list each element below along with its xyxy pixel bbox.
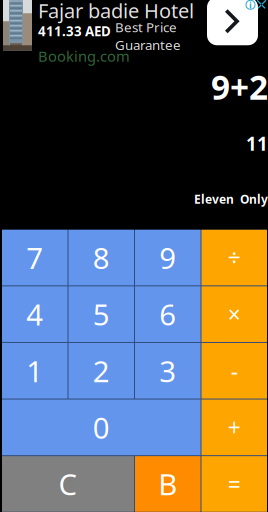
button[interactable]: 8	[68, 230, 134, 285]
button[interactable]: ÷	[201, 230, 267, 285]
button[interactable]: ×	[201, 286, 267, 342]
staticText: 411.33 AED	[38, 22, 111, 40]
button[interactable]: 5	[68, 286, 134, 342]
button[interactable]: =	[201, 456, 267, 512]
staticText: 7	[26, 238, 43, 277]
button[interactable]: -	[201, 343, 267, 398]
staticText: 2	[93, 351, 110, 390]
staticText: 9+2	[211, 65, 268, 109]
staticText: Eleven Only	[194, 191, 268, 207]
button[interactable]: 4	[2, 286, 67, 342]
button[interactable]: 9	[135, 230, 200, 285]
staticText: 3	[159, 351, 176, 390]
staticText: Fajar badie Hotel	[38, 0, 194, 24]
staticText: 11	[246, 131, 268, 156]
staticText: ×	[228, 299, 241, 329]
staticText: 6	[159, 295, 176, 334]
staticText: Booking.com	[38, 46, 130, 66]
staticText: 0	[93, 408, 110, 447]
staticText: i	[249, 0, 252, 11]
button[interactable]: 1	[2, 343, 67, 398]
button[interactable]: 7	[2, 230, 67, 285]
staticText: =	[228, 469, 241, 499]
button[interactable]: 0	[2, 400, 200, 455]
button[interactable]: 2	[68, 343, 134, 398]
button[interactable]: Open advertisement	[207, 0, 258, 45]
staticText: ÷	[228, 242, 241, 273]
staticText: C	[58, 464, 77, 503]
staticText: 1	[26, 351, 43, 390]
staticText: -	[231, 356, 238, 386]
button[interactable]: Ad information	[245, 0, 256, 10]
staticText: 9	[159, 238, 176, 277]
staticText: 4	[26, 295, 43, 334]
button[interactable]: 6	[135, 286, 200, 342]
staticText: 8	[93, 238, 110, 277]
button[interactable]: 3	[135, 343, 200, 398]
staticText: Best Price Guarantee	[115, 18, 181, 54]
button[interactable]: B	[135, 456, 200, 512]
button[interactable]: Close advertisement	[257, 0, 267, 10]
staticText: B	[158, 464, 177, 503]
staticText: 5	[93, 295, 110, 334]
button[interactable]: +	[201, 400, 267, 455]
staticText: +	[228, 412, 241, 442]
button[interactable]: C	[2, 456, 134, 512]
